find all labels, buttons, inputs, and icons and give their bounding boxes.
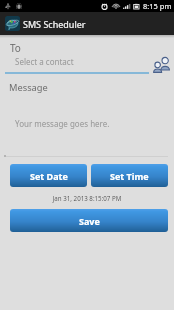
button[interactable]: Select a contact <box>5 56 149 74</box>
button[interactable]: Set Time <box>91 164 168 187</box>
button[interactable]: Set Date <box>10 164 87 187</box>
staticText: Set Time <box>110 170 149 182</box>
button[interactable]: Pick contact <box>151 56 170 75</box>
staticText: Set Date <box>30 170 68 182</box>
staticText: Save <box>79 215 100 227</box>
button[interactable]: Save <box>10 209 168 232</box>
staticText: To <box>10 41 21 55</box>
staticText: 8:15 pm <box>143 1 172 11</box>
staticText: SMS Scheduler <box>23 18 86 30</box>
button[interactable]: Your message goes here. <box>4 112 168 157</box>
staticText: Message <box>9 81 48 94</box>
staticText: Select a contact <box>15 56 74 67</box>
staticText: Your message goes here. <box>15 118 110 129</box>
staticText: Jan 31, 2013 8:15:07 PM <box>0 194 174 202</box>
